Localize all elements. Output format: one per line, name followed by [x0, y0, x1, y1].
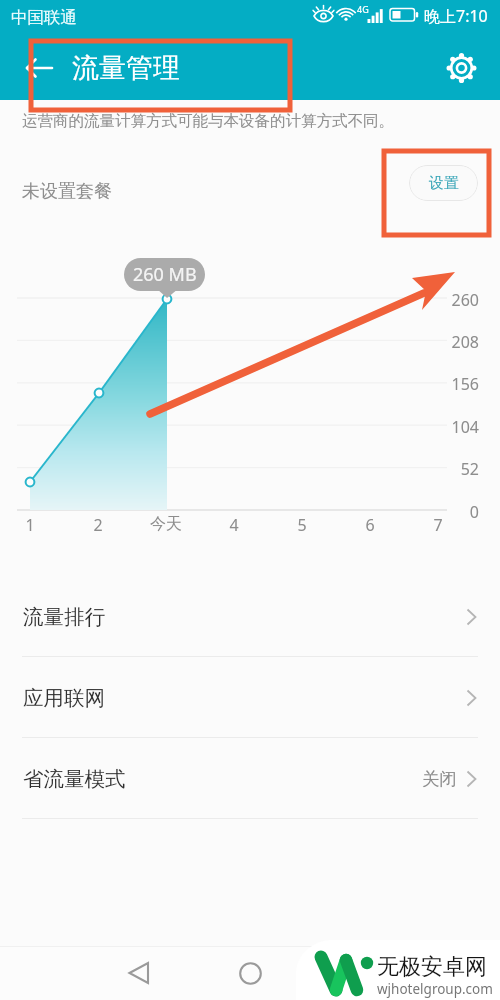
staticText: 运营商的流量计算方式可能与本设备的计算方式不同。	[22, 111, 394, 131]
button[interactable]: 应用联网	[0, 657, 500, 738]
staticText: 0	[429, 501, 479, 523]
staticText: 省流量模式	[23, 766, 126, 792]
staticText: 156	[429, 373, 479, 395]
staticText: 1	[25, 514, 35, 536]
staticText: 流量管理	[72, 51, 180, 85]
staticText: 52	[429, 458, 479, 480]
staticText: 4G	[357, 3, 369, 15]
button[interactable]: 省流量模式	[0, 738, 500, 819]
button[interactable]: Back	[21, 54, 57, 82]
staticText: 104	[429, 416, 479, 438]
staticText: 设置	[429, 174, 459, 193]
staticText: 未设置套餐	[22, 180, 112, 203]
staticText: 今天	[150, 514, 182, 534]
staticText: 关闭	[422, 768, 457, 790]
staticText: 晚上7:10	[424, 5, 488, 27]
button[interactable]: 流量排行	[0, 576, 500, 657]
staticText: 2	[93, 514, 103, 536]
staticText: wjhotelgroup.com	[377, 980, 493, 998]
staticText: 5	[297, 514, 307, 536]
staticText: 应用联网	[23, 685, 105, 711]
button[interactable]: Back	[109, 953, 169, 993]
staticText: 208	[429, 331, 479, 353]
button[interactable]: 设置	[409, 165, 478, 201]
staticText: 6	[365, 514, 375, 536]
staticText: 无极安卓网	[377, 953, 487, 981]
staticText: 260 MB	[133, 262, 197, 287]
staticText: 中国联通	[11, 7, 77, 28]
button[interactable]: Settings	[444, 51, 479, 86]
staticText: 4	[229, 514, 239, 536]
button[interactable]: Home	[220, 953, 280, 993]
staticText: 7	[433, 514, 443, 536]
staticText: 流量排行	[23, 604, 105, 630]
staticText: 260	[429, 289, 479, 311]
